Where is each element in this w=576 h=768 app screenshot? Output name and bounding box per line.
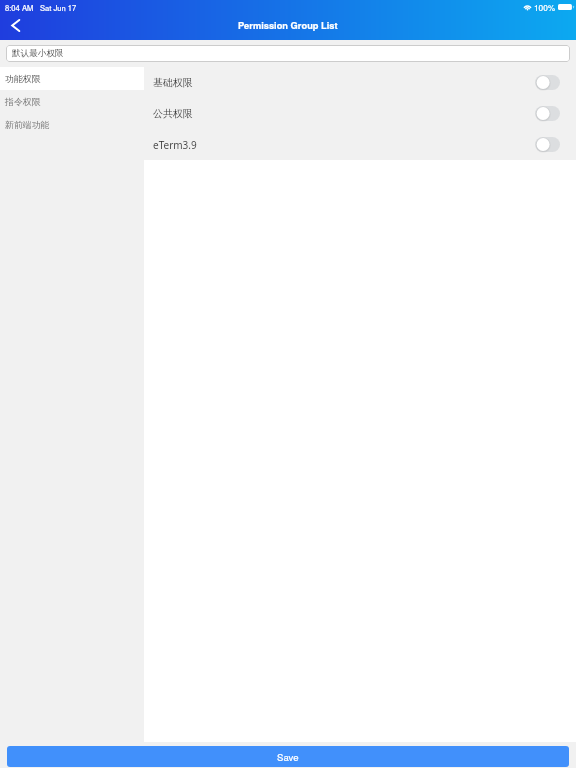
button[interactable]: 新前端功能 xyxy=(0,113,144,136)
staticText: 100% xyxy=(534,1,556,13)
button[interactable]: Back xyxy=(0,12,31,39)
button[interactable]: 功能权限 xyxy=(0,67,144,90)
button[interactable]: Toggle permission xyxy=(535,75,560,90)
button[interactable]: 公共权限 xyxy=(144,98,576,129)
staticText: Permission Group List xyxy=(238,19,338,32)
staticText: 基础权限 xyxy=(153,76,193,89)
staticText: Save xyxy=(277,750,299,764)
button[interactable]: Toggle permission xyxy=(535,137,560,152)
staticText: 公共权限 xyxy=(153,107,193,120)
staticText: 指令权限 xyxy=(5,96,41,107)
staticText: eTerm3.9 xyxy=(153,138,197,152)
button[interactable]: Save xyxy=(7,746,569,767)
staticText: 8:04 AM xyxy=(5,2,34,13)
staticText: 功能权限 xyxy=(5,73,41,84)
staticText: 默认最小权限 xyxy=(12,48,64,59)
button[interactable]: 基础权限 xyxy=(144,67,576,98)
button[interactable]: Toggle permission xyxy=(535,106,560,121)
staticText: 新前端功能 xyxy=(5,119,50,130)
button[interactable]: eTerm3.9 xyxy=(144,129,576,160)
button[interactable]: 指令权限 xyxy=(0,90,144,113)
staticText: Sat Jun 17 xyxy=(40,2,77,13)
button[interactable]: 默认最小权限 xyxy=(6,45,570,62)
